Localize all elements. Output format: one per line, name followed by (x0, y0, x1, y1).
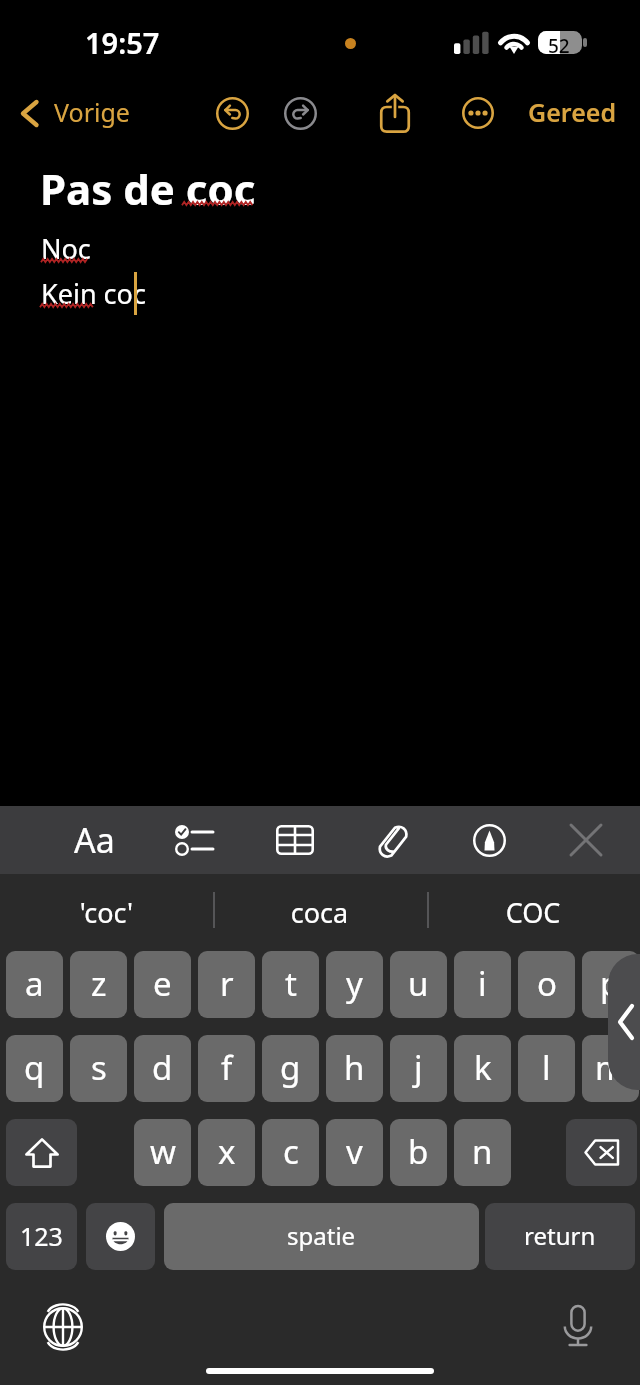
staticText: h (344, 1045, 365, 1090)
button[interactable]: Undo (206, 87, 258, 139)
button[interactable]: Checklist (162, 806, 226, 874)
button[interactable]: y (326, 951, 383, 1018)
button[interactable]: return (485, 1203, 635, 1270)
button[interactable] (566, 1119, 637, 1186)
button[interactable]: r (198, 951, 255, 1018)
button[interactable]: l (518, 1035, 575, 1102)
staticText: Aa (74, 817, 115, 863)
button[interactable]: i (454, 951, 511, 1018)
staticText: 'coc' (0, 894, 213, 931)
button[interactable]: d (134, 1035, 191, 1102)
staticText: Noc (41, 230, 91, 267)
staticText: f (221, 1045, 233, 1090)
button[interactable]: o (518, 951, 575, 1018)
button[interactable]: spatie (164, 1203, 479, 1270)
staticText: s (91, 1045, 107, 1090)
button[interactable]: s (70, 1035, 127, 1102)
button[interactable]: Dictation (551, 1300, 605, 1354)
button[interactable]: n (454, 1119, 511, 1186)
button[interactable]: g (262, 1035, 319, 1102)
staticText: b (408, 1129, 429, 1174)
button[interactable]: q (6, 1035, 63, 1102)
button[interactable]: Gereed (518, 80, 627, 146)
staticText: Pas de coc (40, 160, 256, 217)
staticText: i (478, 961, 487, 1006)
button[interactable]: Share (369, 87, 421, 139)
button[interactable]: m (582, 1035, 639, 1102)
staticText: n (472, 1129, 493, 1174)
button[interactable]: More (452, 87, 504, 139)
staticText: z (91, 961, 107, 1006)
button[interactable]: v (326, 1119, 383, 1186)
button[interactable]: p (582, 951, 639, 1018)
button[interactable]: b (390, 1119, 447, 1186)
staticText: g (280, 1045, 301, 1090)
staticText: return (524, 1219, 596, 1252)
staticText: q (24, 1045, 45, 1090)
staticText: d (152, 1045, 173, 1090)
staticText: e (153, 961, 172, 1006)
button[interactable] (6, 1119, 77, 1186)
staticText: Vorige (54, 95, 130, 129)
button[interactable]: h (326, 1035, 383, 1102)
button[interactable]: k (454, 1035, 511, 1102)
staticText: Kein coc (41, 275, 146, 312)
button[interactable] (86, 1203, 155, 1270)
button[interactable]: Table (263, 806, 327, 874)
staticText: o (537, 961, 557, 1006)
staticText: y (346, 961, 363, 1006)
button[interactable]: Expand keyboard (608, 954, 640, 1090)
button[interactable]: a (6, 951, 63, 1018)
button[interactable]: 123 (6, 1203, 77, 1270)
button[interactable]: c (262, 1119, 319, 1186)
button[interactable]: j (390, 1035, 447, 1102)
staticText: Gereed (528, 95, 617, 129)
staticText: k (474, 1045, 492, 1090)
staticText: v (346, 1129, 363, 1174)
staticText: coca (213, 894, 426, 931)
staticText: t (285, 961, 297, 1006)
button[interactable]: Attach (362, 806, 426, 874)
button[interactable]: e (134, 951, 191, 1018)
staticText: w (150, 1129, 176, 1174)
button[interactable]: w (134, 1119, 191, 1186)
staticText: COC (426, 894, 640, 931)
staticText: u (408, 961, 429, 1006)
staticText: p (600, 961, 621, 1006)
staticText: a (25, 961, 44, 1006)
staticText: j (414, 1045, 423, 1090)
button[interactable]: f (198, 1035, 255, 1102)
button[interactable]: Text format (62, 806, 126, 874)
button[interactable]: x (198, 1119, 255, 1186)
button[interactable]: Change keyboard (36, 1300, 90, 1354)
staticText: 123 (20, 1219, 63, 1253)
button[interactable]: Markup (457, 806, 521, 874)
button[interactable]: Hide keyboard (554, 806, 618, 874)
button[interactable]: z (70, 951, 127, 1018)
staticText: r (220, 961, 234, 1006)
button[interactable]: Redo (274, 87, 326, 139)
staticText: x (218, 1129, 236, 1174)
button[interactable]: t (262, 951, 319, 1018)
button[interactable]: u (390, 951, 447, 1018)
staticText: l (542, 1045, 551, 1090)
staticText: spatie (287, 1219, 356, 1252)
staticText: 19:57 (85, 23, 160, 62)
staticText: m (595, 1045, 626, 1090)
button[interactable]: Vorige (13, 80, 138, 146)
staticText: 52 (548, 33, 570, 59)
staticText: c (283, 1129, 299, 1174)
